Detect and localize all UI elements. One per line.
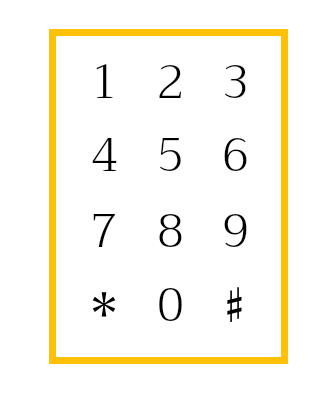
- staticText: 6: [222, 115, 249, 185]
- button[interactable]: 4: [73, 115, 135, 185]
- button[interactable]: 8: [139, 191, 201, 261]
- button[interactable]: Star: [73, 265, 135, 335]
- button[interactable]: 2: [139, 42, 201, 112]
- button[interactable]: 1: [73, 42, 135, 112]
- staticText: 7: [91, 191, 118, 261]
- button[interactable]: 5: [139, 115, 201, 185]
- button[interactable]: 7: [73, 191, 135, 261]
- staticText: 5: [157, 115, 184, 185]
- staticText: 9: [222, 191, 249, 261]
- staticText: 3: [222, 42, 249, 112]
- button[interactable]: 6: [204, 115, 266, 185]
- staticText: 4: [91, 115, 118, 185]
- button[interactable]: Pound: [204, 265, 266, 335]
- button[interactable]: 9: [204, 191, 266, 261]
- button[interactable]: 3: [204, 42, 266, 112]
- staticText: 1: [91, 42, 118, 112]
- staticText: 2: [157, 42, 184, 112]
- staticText: 8: [157, 191, 184, 261]
- button[interactable]: 0: [139, 265, 201, 335]
- staticText: 0: [157, 265, 184, 335]
